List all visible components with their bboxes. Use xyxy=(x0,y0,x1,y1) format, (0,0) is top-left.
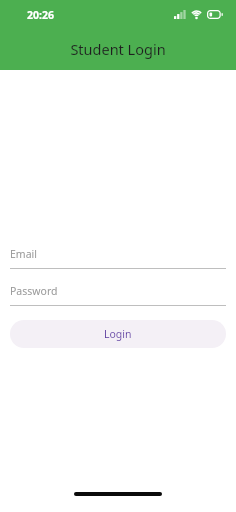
staticText: 20:26 xyxy=(27,8,54,22)
staticText: Password xyxy=(10,284,58,298)
button[interactable]: Email xyxy=(10,245,226,269)
other: Wi-Fi xyxy=(191,10,202,19)
staticText: Student Login xyxy=(70,39,166,59)
other: Battery xyxy=(207,10,223,19)
staticText: Login xyxy=(104,327,132,341)
button[interactable]: Password xyxy=(10,282,226,306)
other: Cellular signal xyxy=(174,10,186,19)
staticText: Email xyxy=(10,247,37,261)
button[interactable]: Login xyxy=(10,320,226,348)
